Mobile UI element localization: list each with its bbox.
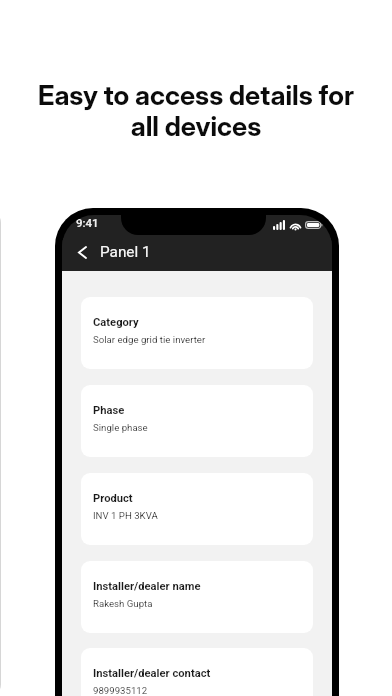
button[interactable]: Product: [81, 473, 313, 545]
staticText: Installer/dealer contact: [93, 667, 211, 680]
staticText: INV 1 PH 3KVA: [93, 510, 158, 521]
staticText: Easy to access details for all devices: [22, 79, 370, 143]
button[interactable]: Category: [81, 297, 313, 369]
staticText: Single phase: [93, 422, 148, 433]
staticText: Rakesh Gupta: [93, 598, 153, 609]
button[interactable]: Installer/dealer contact: [81, 648, 313, 696]
staticText: Category: [93, 316, 139, 329]
staticText: Product: [93, 492, 133, 505]
staticText: Panel 1: [100, 243, 151, 261]
staticText: 9:41: [76, 216, 99, 229]
staticText: Phase: [93, 404, 125, 417]
button[interactable]: Back: [71, 241, 93, 263]
button[interactable]: Installer/dealer name: [81, 561, 313, 633]
staticText: Solar edge grid tie inverter: [93, 334, 206, 345]
staticText: 9899935112: [93, 685, 148, 696]
staticText: Installer/dealer name: [93, 580, 201, 593]
button[interactable]: Phase: [81, 385, 313, 457]
